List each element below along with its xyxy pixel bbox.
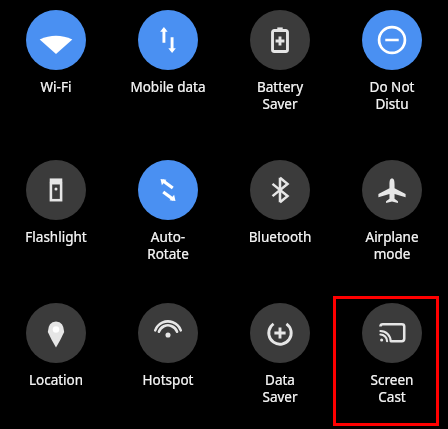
button[interactable]: Bluetooth <box>224 150 336 246</box>
button[interactable]: Do Not Distu <box>336 0 448 113</box>
staticText: Battery Saver <box>226 78 334 113</box>
button[interactable]: Battery Saver <box>224 0 336 113</box>
button[interactable]: Location <box>0 293 112 389</box>
staticText: Hotspot <box>114 371 222 389</box>
button[interactable]: Airplane mode <box>336 150 448 263</box>
button[interactable]: Mobile data <box>112 0 224 96</box>
button[interactable]: Auto- Rotate <box>112 150 224 263</box>
button[interactable]: Screen Cast <box>336 293 448 406</box>
staticText: Location <box>2 371 110 389</box>
staticText: Auto- Rotate <box>114 228 222 263</box>
staticText: Data Saver <box>226 371 334 406</box>
staticText: Airplane mode <box>338 228 446 263</box>
staticText: Mobile data <box>114 78 222 96</box>
button[interactable]: Wi-Fi <box>0 0 112 96</box>
button[interactable]: Hotspot <box>112 293 224 389</box>
button[interactable]: Data Saver <box>224 293 336 406</box>
staticText: Bluetooth <box>226 228 334 246</box>
staticText: Wi-Fi <box>2 78 110 96</box>
button[interactable]: Flashlight <box>0 150 112 246</box>
staticText: Do Not Distu <box>338 78 446 113</box>
staticText: Flashlight <box>2 228 110 246</box>
staticText: Screen Cast <box>338 371 446 406</box>
